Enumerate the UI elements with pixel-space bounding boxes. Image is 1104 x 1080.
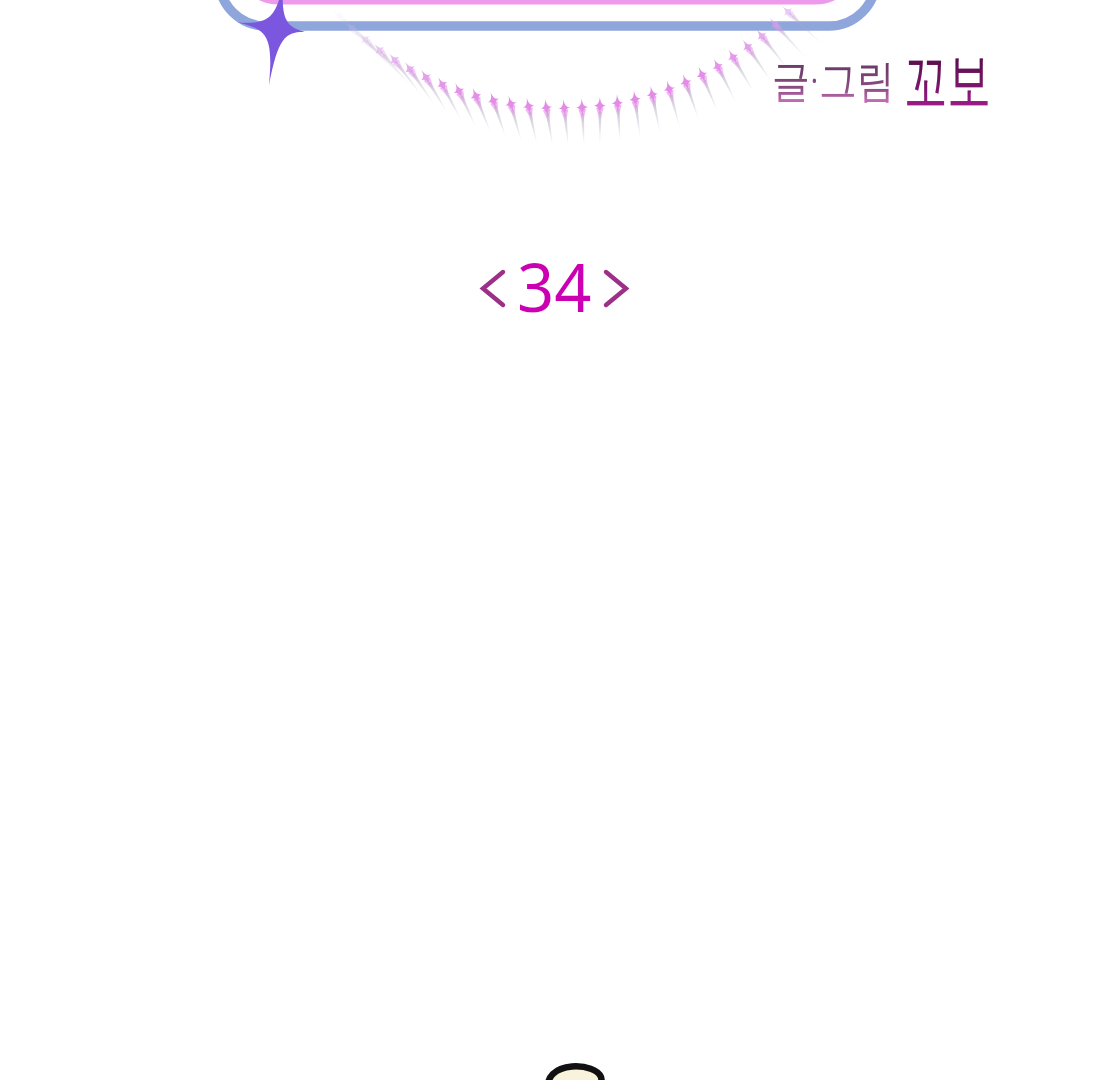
button[interactable]: Previous episode [466,257,518,321]
button[interactable]: Next episode [591,257,643,321]
button[interactable]: Previous episode [0,0,1104,1080]
